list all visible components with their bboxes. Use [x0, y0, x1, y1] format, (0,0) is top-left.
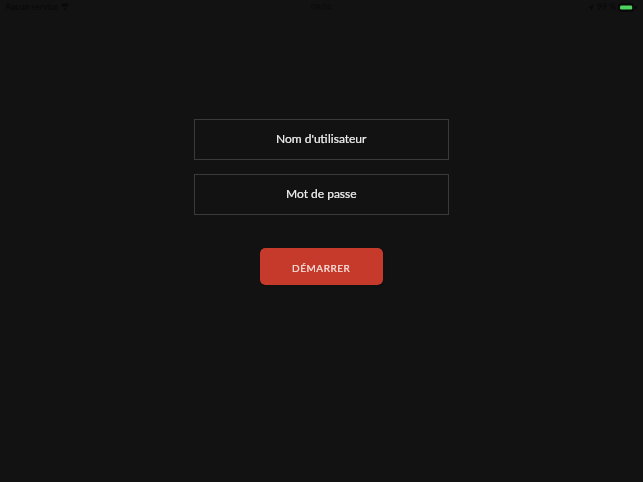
- staticText: Mot de passe: [286, 186, 357, 200]
- staticText: DÉMARRER: [292, 262, 351, 274]
- other: Location: [588, 4, 594, 11]
- button[interactable]: Mot de passe: [194, 174, 449, 215]
- button[interactable]: DÉMARRER: [260, 248, 383, 285]
- staticText: Nom d'utilisateur: [276, 131, 367, 145]
- button[interactable]: Nom d'utilisateur: [194, 119, 449, 160]
